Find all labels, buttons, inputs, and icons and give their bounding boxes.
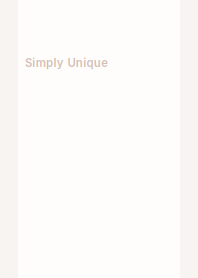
staticText: Simply Unique [25, 56, 108, 70]
button[interactable]: Simply Unique [18, 0, 180, 70]
